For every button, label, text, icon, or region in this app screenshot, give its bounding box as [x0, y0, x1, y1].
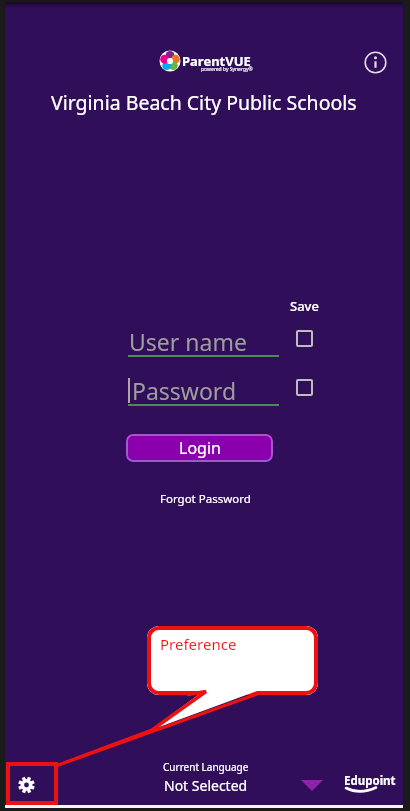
staticText: Not Selected [164, 776, 248, 795]
staticText: Edupoint [344, 773, 396, 789]
staticText: Forgot Password [160, 491, 251, 507]
staticText: Preference [160, 634, 237, 654]
staticText: ParentVUE [182, 52, 251, 70]
staticText: Virginia Beach City Public Schools [51, 89, 357, 116]
staticText: Password [132, 375, 237, 406]
staticText: Login [179, 437, 221, 459]
staticText: powered by Synergy® [201, 66, 253, 73]
button[interactable] [296, 330, 313, 347]
button[interactable]: Login [126, 434, 273, 462]
button[interactable] [296, 379, 313, 396]
staticText: Current Language [163, 760, 249, 774]
staticText: User name [129, 326, 247, 357]
button[interactable] [6, 762, 58, 805]
button[interactable]: Not Selected [106, 775, 306, 796]
staticText: Save [290, 297, 319, 314]
button[interactable] [362, 49, 389, 76]
button[interactable]: Forgot Password [155, 489, 255, 509]
